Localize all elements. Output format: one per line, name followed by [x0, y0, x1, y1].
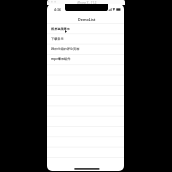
staticText: 4:34: [54, 7, 61, 12]
staticText: DemoList: [78, 17, 96, 22]
staticText: 下载音乐: [51, 37, 64, 41]
staticText: iPhone X - 11.2: [77, 1, 97, 5]
staticText: 我的分组的评论页面: [51, 47, 80, 51]
staticText: 横屏视频播放: [51, 27, 70, 31]
button[interactable]: 我的分组的评论页面: [47, 43, 124, 53]
button[interactable]: 横屏视频播放: [47, 23, 124, 33]
button[interactable]: 下载音乐: [47, 33, 124, 43]
staticText: mpv播放组件: [51, 57, 71, 61]
button[interactable]: mpv播放组件: [47, 53, 124, 63]
